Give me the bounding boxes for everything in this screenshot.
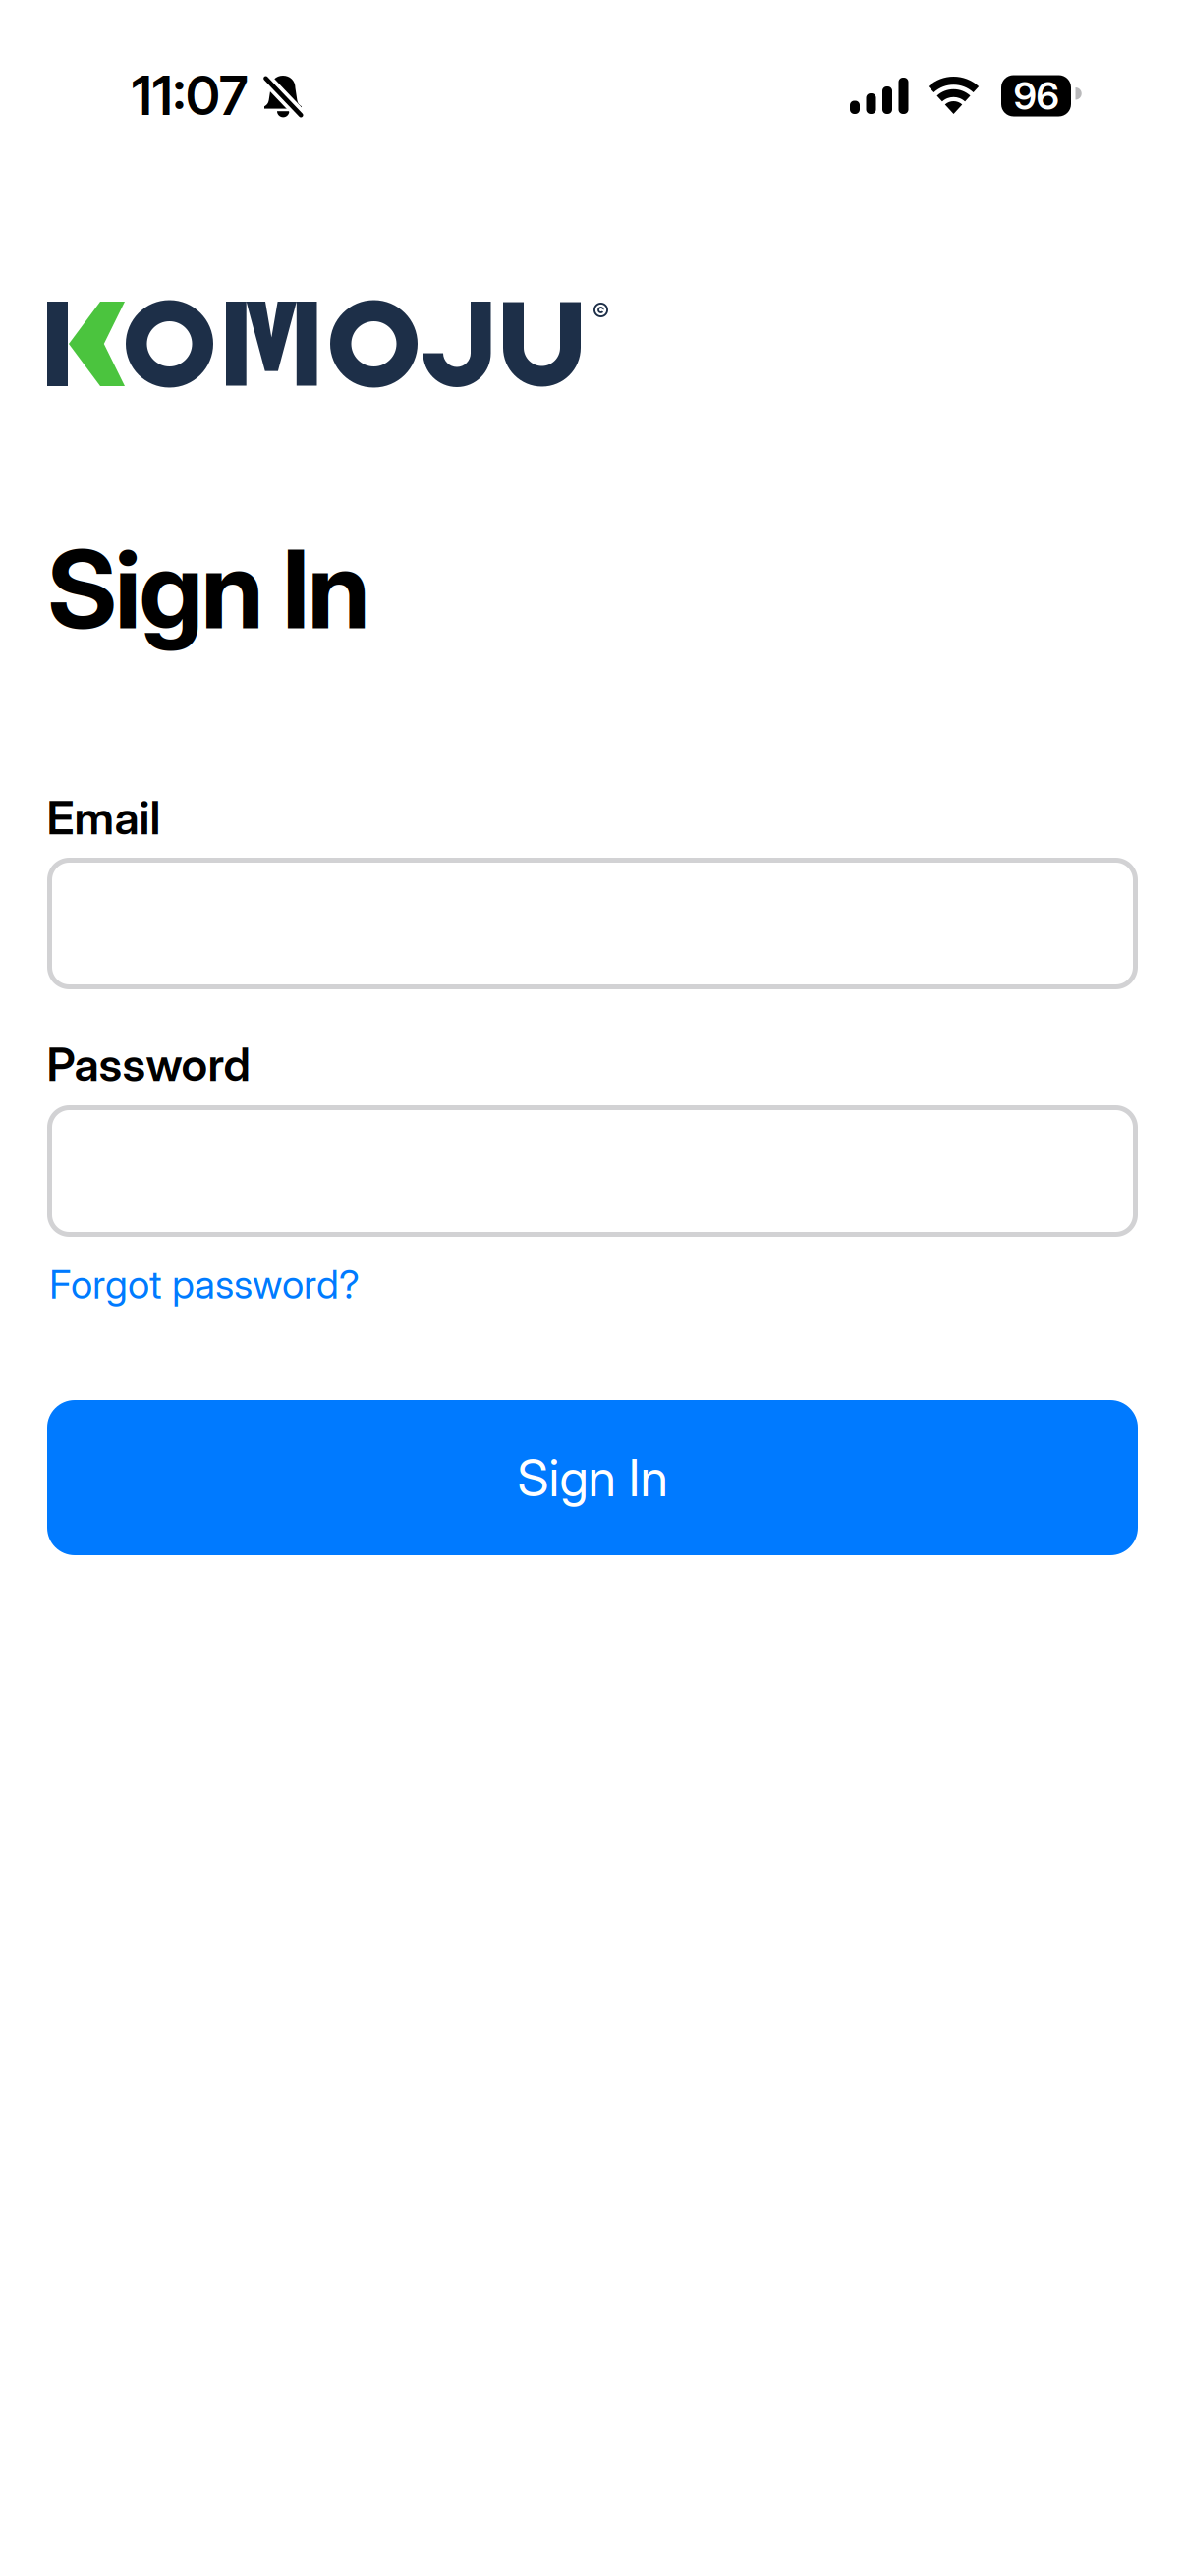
button[interactable]: Sign In	[47, 1400, 1138, 1555]
staticText: 11:07	[132, 63, 248, 128]
staticText: Sign In	[517, 1447, 668, 1508]
staticText: Email	[47, 790, 161, 845]
button[interactable]: Forgot password?	[49, 1260, 360, 1308]
staticText: Sign In	[47, 524, 370, 654]
button[interactable]	[47, 858, 1138, 989]
staticText: Password	[47, 1036, 250, 1092]
button[interactable]	[47, 1105, 1138, 1237]
staticText: Forgot password?	[49, 1260, 360, 1308]
staticText: 96	[1014, 73, 1059, 119]
